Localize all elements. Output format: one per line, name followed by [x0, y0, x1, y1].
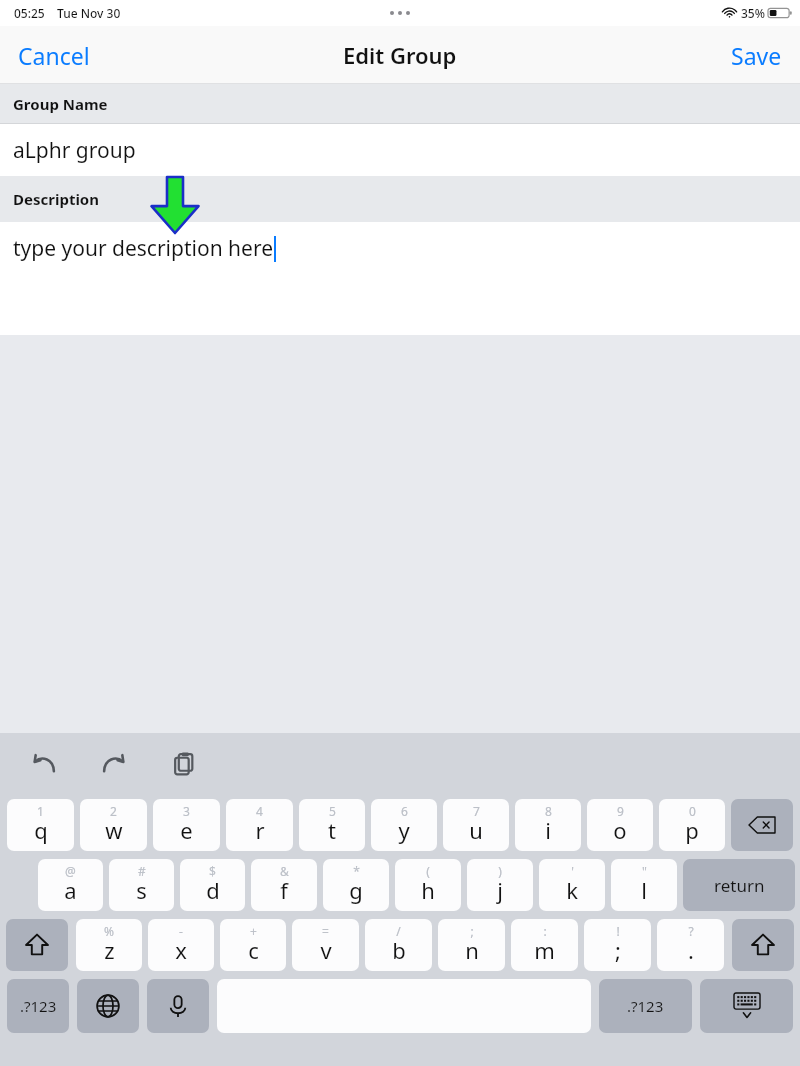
- button[interactable]: ;: [438, 919, 505, 971]
- staticText: e: [180, 815, 193, 845]
- staticText: #: [138, 863, 146, 879]
- button[interactable]: :: [511, 919, 578, 971]
- button[interactable]: *: [323, 859, 389, 911]
- staticText: Edit Group: [343, 40, 457, 70]
- staticText: /: [396, 923, 401, 939]
- staticText: c: [248, 935, 259, 965]
- button[interactable]: ): [467, 859, 533, 911]
- staticText: @: [65, 863, 76, 879]
- staticText: Cancel: [18, 40, 90, 71]
- button[interactable]: Save: [713, 32, 800, 79]
- staticText: =: [322, 923, 329, 939]
- button[interactable]: (: [395, 859, 461, 911]
- staticText: 1: [37, 803, 44, 819]
- staticText: ': [571, 863, 574, 879]
- staticText: 2: [110, 803, 117, 819]
- button[interactable]: 5: [299, 799, 365, 851]
- button[interactable]: =: [292, 919, 359, 971]
- staticText: Save: [731, 40, 782, 71]
- staticText: 05:25: [14, 5, 45, 21]
- staticText: .?123: [627, 996, 664, 1016]
- button[interactable]: Undo: [24, 744, 64, 784]
- staticText: i: [545, 815, 551, 845]
- staticText: -: [179, 923, 183, 939]
- staticText: j: [497, 875, 503, 905]
- staticText: ): [498, 863, 502, 879]
- button[interactable]: Shift: [6, 919, 68, 971]
- staticText: o: [613, 815, 627, 845]
- staticText: z: [104, 935, 115, 965]
- staticText: p: [685, 815, 699, 845]
- button[interactable]: 2: [80, 799, 147, 851]
- staticText: .?123: [20, 996, 57, 1016]
- staticText: 4: [256, 803, 263, 819]
- staticText: t: [328, 815, 336, 845]
- button[interactable]: type your description here: [0, 222, 800, 335]
- button[interactable]: -: [148, 919, 214, 971]
- button[interactable]: return: [683, 859, 795, 911]
- staticText: 9: [617, 803, 624, 819]
- button[interactable]: .?123: [7, 979, 69, 1033]
- staticText: b: [392, 935, 406, 965]
- staticText: 0: [689, 803, 696, 819]
- button[interactable]: !: [584, 919, 651, 971]
- button[interactable]: #: [109, 859, 174, 911]
- staticText: Tue Nov 30: [57, 5, 121, 21]
- button[interactable]: Cancel: [0, 32, 108, 79]
- button[interactable]: Shift: [732, 919, 794, 971]
- staticText: l: [641, 875, 647, 905]
- staticText: ;: [615, 935, 621, 965]
- button[interactable]: @: [38, 859, 103, 911]
- button[interactable]: Backspace: [731, 799, 793, 851]
- staticText: n: [465, 935, 479, 965]
- staticText: $: [209, 863, 216, 879]
- button[interactable]: +: [220, 919, 286, 971]
- staticText: a: [64, 875, 77, 905]
- staticText: 35%: [741, 5, 765, 21]
- button[interactable]: $: [180, 859, 245, 911]
- staticText: 7: [473, 803, 480, 819]
- button[interactable]: aLphr group: [0, 124, 800, 176]
- button[interactable]: /: [365, 919, 432, 971]
- staticText: u: [469, 815, 483, 845]
- staticText: &: [280, 863, 289, 879]
- button[interactable]: 6: [371, 799, 437, 851]
- staticText: +: [250, 923, 257, 939]
- button[interactable]: ': [539, 859, 605, 911]
- button[interactable]: 8: [515, 799, 581, 851]
- staticText: y: [398, 815, 410, 845]
- staticText: type your description here: [13, 234, 273, 263]
- staticText: d: [206, 875, 220, 905]
- button[interactable]: ": [611, 859, 677, 911]
- staticText: (: [426, 863, 430, 879]
- button[interactable]: Change keyboard: [77, 979, 139, 1033]
- staticText: m: [534, 935, 555, 965]
- staticText: r: [255, 815, 265, 845]
- button[interactable]: 4: [226, 799, 293, 851]
- button[interactable]: 9: [587, 799, 653, 851]
- staticText: ;: [470, 923, 474, 939]
- staticText: q: [34, 815, 48, 845]
- staticText: aLphr group: [13, 136, 136, 165]
- button[interactable]: 0: [659, 799, 725, 851]
- button[interactable]: 1: [7, 799, 74, 851]
- button[interactable]: Hide keyboard: [700, 979, 793, 1033]
- staticText: 8: [545, 803, 552, 819]
- staticText: ": [642, 863, 647, 879]
- button[interactable]: 7: [443, 799, 509, 851]
- button[interactable]: Redo: [94, 744, 134, 784]
- staticText: 6: [401, 803, 408, 819]
- button[interactable]: Dictate: [147, 979, 209, 1033]
- staticText: %: [104, 923, 114, 939]
- staticText: v: [320, 935, 332, 965]
- button[interactable]: ?: [657, 919, 724, 971]
- staticText: s: [136, 875, 147, 905]
- button[interactable]: &: [251, 859, 317, 911]
- button[interactable]: %: [76, 919, 142, 971]
- button[interactable]: 3: [153, 799, 220, 851]
- staticText: *: [353, 863, 360, 879]
- button[interactable]: .?123: [599, 979, 692, 1033]
- button[interactable]: Paste: [164, 744, 204, 784]
- staticText: ?: [688, 923, 694, 939]
